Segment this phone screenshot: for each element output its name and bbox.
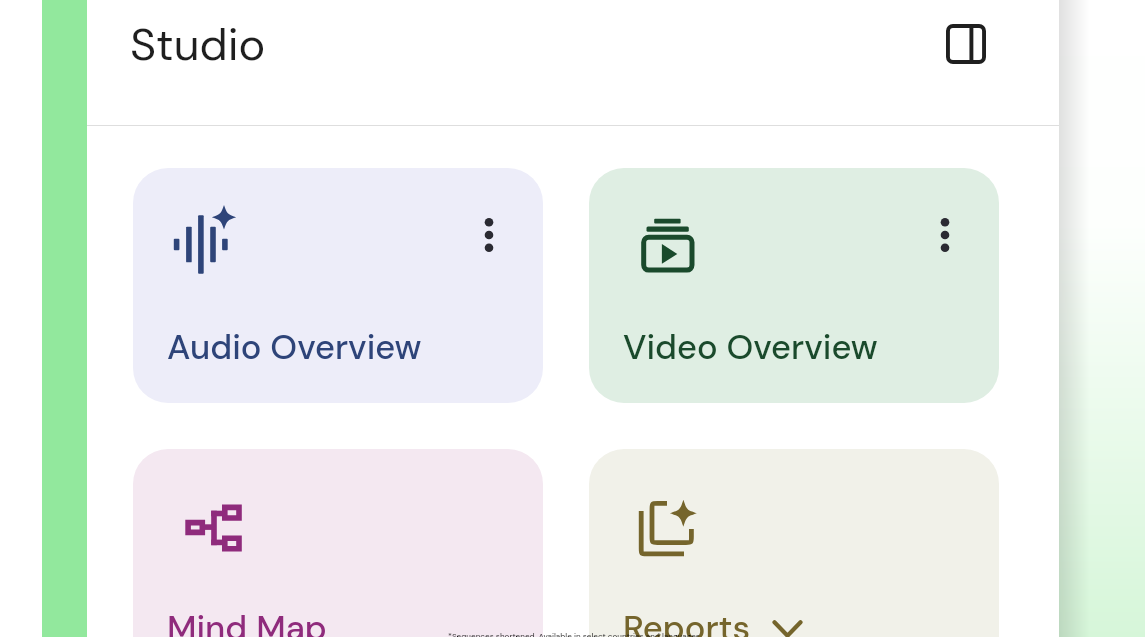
- button[interactable]: Mind Map: [133, 449, 543, 637]
- staticText: Video Overview: [623, 325, 878, 370]
- button[interactable]: More options: [465, 211, 513, 259]
- button[interactable]: More options: [921, 211, 969, 259]
- button[interactable]: Audio Overview: [133, 168, 543, 403]
- staticText: *Sequences shortened. Available in selec…: [448, 631, 702, 637]
- staticText: Studio: [130, 15, 266, 74]
- button[interactable]: Reports: [589, 449, 999, 637]
- staticText: Audio Overview: [167, 325, 422, 370]
- staticText: Mind Map: [167, 606, 327, 637]
- button[interactable]: Video Overview: [589, 168, 999, 403]
- button[interactable]: Toggle side panel: [934, 12, 998, 76]
- staticText: Reports: [623, 606, 751, 637]
